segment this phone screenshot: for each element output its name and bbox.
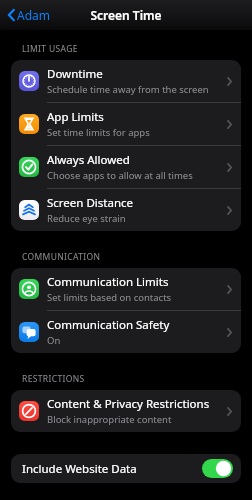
staticText: COMMUNICATION (22, 251, 252, 263)
staticText: Choose apps to allow at all times (47, 169, 193, 182)
button[interactable]: Communication Limits (11, 268, 241, 311)
staticText: Block inappropriate content (47, 413, 172, 426)
staticText: LIMIT USAGE (22, 43, 252, 55)
staticText: Downtime (47, 66, 103, 82)
button[interactable]: Screen Distance (11, 189, 241, 231)
staticText: Include Website Data (22, 461, 137, 477)
staticText: Schedule time away from the screen (47, 83, 209, 96)
staticText: RESTRICTIONS (22, 373, 252, 385)
staticText: Set time limits for apps (47, 126, 150, 139)
staticText: Content & Privacy Restrictions (47, 396, 210, 412)
staticText: App Limits (47, 109, 104, 125)
staticText: Screen Time (90, 7, 162, 23)
button[interactable]: Always Allowed (11, 146, 241, 189)
button[interactable]: Downtime (11, 60, 241, 103)
button[interactable]: Adam (4, 3, 55, 27)
staticText: Communication Limits (47, 274, 169, 290)
staticText: Adam (17, 7, 51, 23)
button[interactable]: Communication Safety (11, 311, 241, 353)
staticText: Always Allowed (47, 152, 130, 168)
staticText: Communication Safety (47, 317, 170, 333)
button[interactable]: App Limits (11, 103, 241, 146)
staticText: Set limits based on contacts (47, 291, 172, 304)
staticText: Screen Distance (47, 195, 134, 211)
button[interactable]: Include Website Data (11, 454, 241, 483)
staticText: On (47, 334, 61, 347)
button[interactable]: Content & Privacy Restrictions (11, 390, 241, 432)
staticText: Reduce eye strain (47, 212, 126, 225)
button[interactable]: Include Website Data toggle, on (202, 459, 233, 478)
